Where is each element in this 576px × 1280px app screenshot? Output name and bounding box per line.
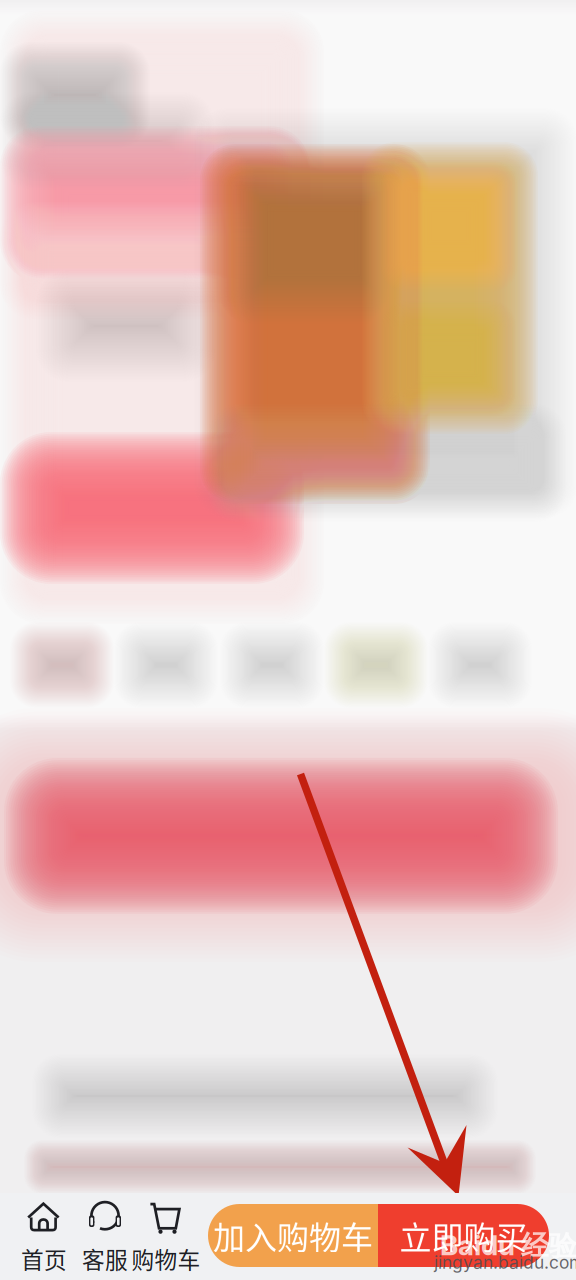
button[interactable]: 加入购物车 bbox=[208, 1204, 378, 1267]
staticText: Baidu 经验 bbox=[440, 1228, 576, 1263]
staticText: 加入购物车 bbox=[213, 1212, 373, 1259]
staticText: 首页 bbox=[21, 1242, 67, 1275]
button[interactable]: 购物车 bbox=[126, 1204, 206, 1270]
button[interactable]: 客服 bbox=[71, 1204, 139, 1270]
staticText: 购物车 bbox=[131, 1242, 200, 1275]
staticText: 立即购买 bbox=[399, 1212, 527, 1259]
staticText: 客服 bbox=[82, 1242, 128, 1275]
button[interactable]: 首页 bbox=[10, 1204, 78, 1270]
staticText: jingyan.baidu.com bbox=[434, 1252, 576, 1273]
button[interactable]: 立即购买 bbox=[378, 1204, 549, 1267]
